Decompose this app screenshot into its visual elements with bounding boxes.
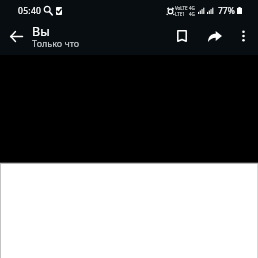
button[interactable]: Share — [202, 23, 228, 49]
staticText: Вы — [32, 23, 50, 40]
button[interactable]: More options — [231, 23, 256, 48]
staticText: VoLTE — [175, 5, 188, 11]
staticText: Только что — [32, 37, 80, 49]
staticText: 05:40 — [18, 5, 42, 17]
button[interactable]: Save — [169, 23, 195, 49]
staticText: 77% — [218, 5, 235, 17]
staticText: 4G — [189, 5, 195, 11]
staticText: 4G — [189, 11, 195, 17]
staticText: LTE1 — [175, 11, 185, 17]
button[interactable]: Back — [3, 23, 30, 50]
